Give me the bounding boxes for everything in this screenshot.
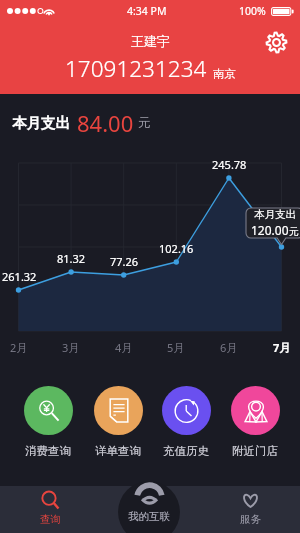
staticText: 4月 xyxy=(115,340,133,355)
staticText: 消费查询 xyxy=(25,444,71,456)
staticText: 81.32 xyxy=(57,251,86,266)
staticText: 充值历史 xyxy=(163,444,209,456)
staticText: 王建宇 xyxy=(131,33,170,49)
staticText: 261.32 xyxy=(2,269,37,284)
staticText: 元 xyxy=(138,115,151,131)
staticText: 本月支出 xyxy=(12,114,70,132)
staticText: 6月 xyxy=(220,340,238,355)
staticText: 查询 xyxy=(40,513,61,526)
button[interactable]: 设置 xyxy=(260,26,292,58)
staticText: 元 xyxy=(289,225,299,238)
staticText: 245.78 xyxy=(212,157,247,172)
staticText: 附近门店 xyxy=(232,444,278,456)
staticText: 南京 xyxy=(213,67,236,81)
staticText: 77.26 xyxy=(110,254,139,269)
staticText: 7月 xyxy=(273,340,291,355)
staticText: 17091231234 xyxy=(65,53,207,84)
staticText: 102.16 xyxy=(159,241,194,256)
button[interactable]: 我的互联 xyxy=(118,481,180,533)
staticText: 2月 xyxy=(10,340,28,355)
button[interactable]: 查询 xyxy=(0,486,100,533)
button[interactable]: 充值历史 xyxy=(156,386,216,456)
staticText: 详单查询 xyxy=(95,444,141,456)
button[interactable]: 服务 xyxy=(200,486,300,533)
staticText: 本月支出 xyxy=(254,208,296,221)
button[interactable]: 附近门店 xyxy=(225,386,285,456)
staticText: 5月 xyxy=(167,340,185,355)
staticText: 120.00 xyxy=(251,222,289,238)
button[interactable]: 详单查询 xyxy=(88,386,148,456)
button[interactable]: 我的互联 xyxy=(108,487,190,523)
staticText: 3月 xyxy=(62,340,80,355)
staticText: 4:34 PM xyxy=(127,4,167,18)
button[interactable]: 消费查询 xyxy=(18,386,78,456)
staticText: 我的互联 xyxy=(128,510,170,523)
staticText: 服务 xyxy=(240,513,261,526)
staticText: 84.00 xyxy=(77,108,134,138)
staticText: 100% xyxy=(239,4,266,18)
